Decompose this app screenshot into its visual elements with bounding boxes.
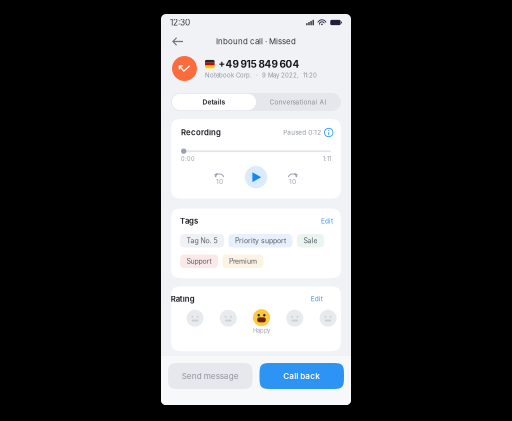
staticText: 10: [289, 178, 296, 186]
staticText: Sale: [303, 237, 317, 245]
staticText: Tags: [180, 216, 198, 226]
button[interactable]: Call back: [259, 363, 344, 389]
button[interactable]: Rating 5: [319, 309, 337, 334]
staticText: Happy: [253, 327, 270, 334]
staticText: 12:30: [170, 17, 190, 27]
button[interactable]: Rating 2: [219, 309, 237, 334]
button[interactable]: Rating 4: [286, 309, 304, 334]
button[interactable]: Edit: [311, 295, 323, 303]
staticText: Edit: [321, 217, 333, 225]
staticText: Paused 0:12: [283, 129, 321, 136]
button[interactable]: Send message: [168, 363, 252, 389]
button[interactable]: Forward 10 seconds: [282, 166, 304, 188]
button[interactable]: Play: [245, 166, 267, 188]
staticText: Call back: [283, 371, 320, 381]
staticText: Edit: [311, 295, 323, 303]
staticText: +49 915 849 604: [219, 58, 300, 70]
staticText: 10: [216, 178, 223, 186]
staticText: Conversational AI: [270, 98, 327, 106]
button[interactable]: Rating 1: [186, 309, 204, 334]
staticText: Details: [202, 98, 225, 106]
button[interactable]: Conversational AI: [256, 94, 340, 110]
button[interactable]: Back: [167, 32, 189, 50]
staticText: Send message: [182, 371, 239, 381]
staticText: Inbound call · Missed: [216, 37, 296, 46]
staticText: Premium: [229, 257, 257, 265]
button[interactable]: Back 10 seconds: [208, 166, 230, 188]
button[interactable]: Details: [172, 94, 256, 110]
staticText: 0:00: [181, 156, 195, 162]
button[interactable]: Edit: [321, 217, 333, 225]
staticText: Recording: [181, 128, 221, 137]
button[interactable]: Rating 3: [252, 309, 270, 334]
staticText: Rating: [171, 294, 195, 304]
staticText: Priority support: [235, 237, 286, 245]
staticText: Tag No. 5: [187, 237, 218, 245]
staticText: Support: [187, 257, 212, 265]
staticText: Notebook Corp. · 9 May 2022, 11:20: [205, 72, 317, 79]
staticText: 1:11: [323, 156, 331, 162]
